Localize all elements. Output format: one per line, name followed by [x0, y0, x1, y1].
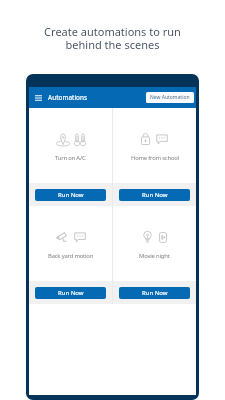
staticText: Automations	[48, 93, 88, 102]
staticText: New Automation	[150, 94, 190, 101]
button[interactable]: Turn on A/C	[29, 108, 112, 206]
staticText: Back yard motion	[48, 252, 94, 260]
staticText: Home from school	[131, 154, 179, 162]
button[interactable]: Open navigation menu	[33, 93, 43, 103]
staticText: Create automations to run behind the sce…	[44, 24, 181, 53]
staticText: Run Now	[58, 191, 84, 199]
staticText: Movie night	[139, 252, 170, 260]
staticText: Turn on A/C	[55, 154, 86, 162]
staticText: Run Now	[142, 289, 168, 297]
button[interactable]: Run Now	[119, 189, 190, 201]
button[interactable]: Home from school	[113, 108, 196, 206]
button[interactable]: Run Now	[35, 287, 106, 299]
button[interactable]: Movie night	[113, 206, 196, 304]
button[interactable]: Run Now	[119, 287, 190, 299]
button[interactable]: Run Now	[35, 189, 106, 201]
button[interactable]: Back yard motion	[29, 206, 112, 304]
staticText: Run Now	[142, 191, 168, 199]
staticText: Run Now	[58, 289, 84, 297]
button[interactable]: New Automation	[146, 92, 194, 103]
